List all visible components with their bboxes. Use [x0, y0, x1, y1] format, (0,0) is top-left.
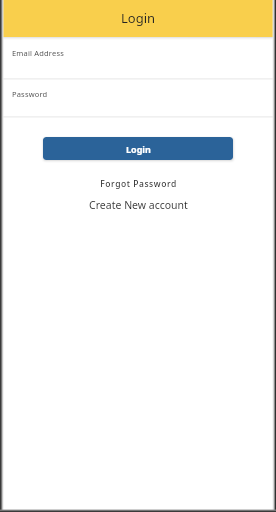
staticText: Email Address	[12, 48, 64, 58]
staticText: Forgot Password	[100, 178, 177, 190]
button[interactable]: Login	[43, 137, 233, 160]
button[interactable]: Forgot Password	[0, 178, 276, 190]
button[interactable]: Email Address	[0, 37, 276, 80]
staticText: Create New account	[89, 198, 188, 212]
staticText: Login	[126, 143, 151, 155]
staticText: Password	[12, 89, 48, 99]
button[interactable]: Create New account	[0, 198, 276, 212]
button[interactable]: Password	[0, 80, 276, 118]
staticText: Login	[121, 9, 156, 27]
